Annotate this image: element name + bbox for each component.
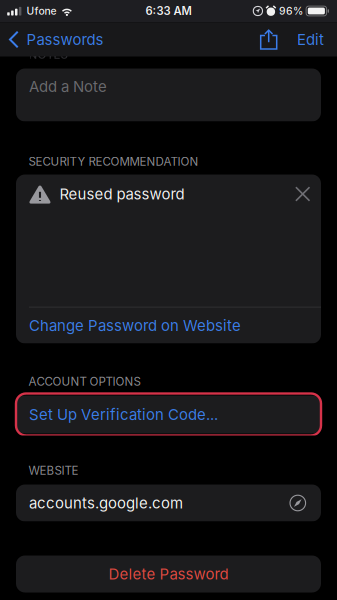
staticText: Set Up Verification Code... — [29, 405, 218, 424]
staticText: ACCOUNT OPTIONS — [28, 374, 140, 388]
button[interactable]: Delete Password — [16, 555, 321, 592]
button[interactable]: Dismiss — [291, 182, 314, 206]
button[interactable]: Set Up Verification Code... — [16, 393, 321, 435]
staticText: WEBSITE — [28, 463, 78, 477]
staticText: Ufone — [27, 5, 57, 17]
staticText: accounts.google.com — [29, 494, 183, 512]
staticText: 6:33 AM — [145, 4, 191, 18]
staticText: Add a Note — [29, 77, 107, 96]
staticText: Change Password on Website — [29, 316, 241, 335]
button[interactable]: accounts.google.com — [16, 484, 321, 521]
staticText: Passwords — [27, 30, 104, 49]
button[interactable]: Add a Note — [16, 68, 321, 121]
staticText: NOTES — [28, 47, 67, 61]
staticText: Delete Password — [108, 565, 228, 583]
button[interactable]: Passwords — [0, 22, 112, 56]
button[interactable]: Edit — [288, 22, 333, 56]
staticText: Edit — [297, 30, 324, 49]
staticText: 96% — [279, 5, 303, 17]
staticText: Reused password — [59, 185, 184, 203]
staticText: SECURITY RECOMMENDATION — [28, 154, 198, 168]
button[interactable]: Share — [255, 22, 288, 56]
button[interactable]: Change Password on Website — [16, 307, 321, 343]
